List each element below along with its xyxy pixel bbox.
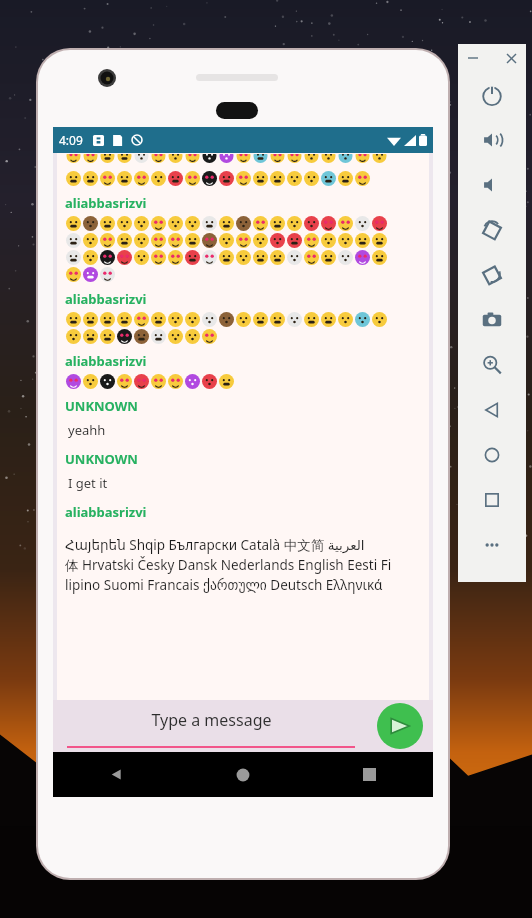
button[interactable]: Back — [458, 387, 526, 432]
button[interactable]: Close — [501, 48, 521, 68]
staticText: UNKNOWN — [65, 450, 138, 468]
staticText: aliabbasrizvi — [65, 194, 147, 212]
button[interactable]: Type a message — [67, 704, 355, 748]
staticText: 4:09 — [59, 132, 83, 148]
staticText: Type a message — [151, 709, 272, 731]
button[interactable]: Home — [458, 432, 526, 477]
button[interactable]: Zoom — [458, 342, 526, 387]
button[interactable]: Overview — [458, 477, 526, 522]
button[interactable]: Rotate left — [458, 207, 526, 252]
button[interactable]: Volume down — [458, 162, 526, 207]
button[interactable]: Send — [377, 703, 423, 749]
staticText: yeahh — [68, 421, 106, 439]
button[interactable]: Home — [179, 752, 306, 797]
button[interactable]: Power — [458, 72, 526, 117]
button[interactable]: Rotate right — [458, 252, 526, 297]
button[interactable]: Volume up — [458, 117, 526, 162]
staticText: aliabbasrizvi — [65, 503, 147, 521]
staticText: UNKNOWN — [65, 397, 138, 415]
staticText: I get it — [68, 474, 108, 492]
button[interactable]: Minimize — [463, 48, 483, 68]
staticText: Հայերեն Shqip Български Català 中文简 العرب… — [65, 536, 392, 594]
staticText: aliabbasrizvi — [65, 352, 147, 370]
button[interactable]: aliabbasrizvi — [57, 153, 429, 700]
staticText: aliabbasrizvi — [65, 290, 147, 308]
button[interactable]: More — [458, 522, 526, 567]
button[interactable]: Recent apps — [306, 752, 433, 797]
button[interactable]: Screenshot — [458, 297, 526, 342]
button[interactable]: Back — [53, 752, 179, 797]
